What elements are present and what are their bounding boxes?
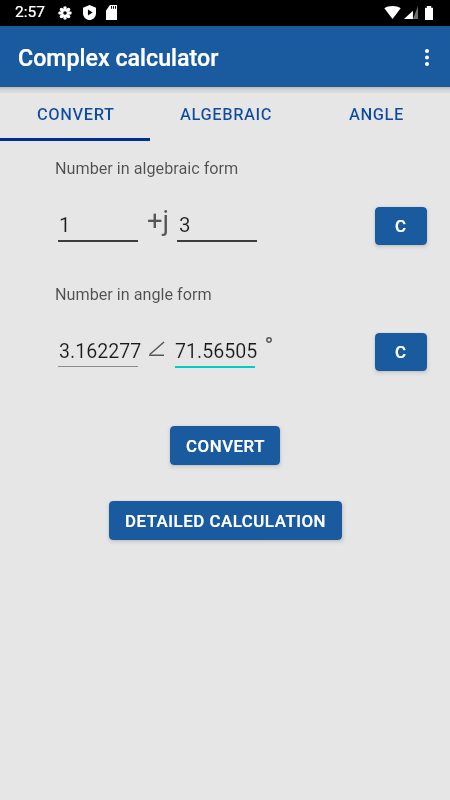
button[interactable]: DETAILED CALCULATION xyxy=(109,501,342,540)
button[interactable]: CONVERT xyxy=(170,426,280,465)
button[interactable]: C xyxy=(375,333,427,371)
staticText: CONVERT xyxy=(186,436,266,456)
staticText: 71.56505 xyxy=(175,340,258,363)
button[interactable]: ANGLE xyxy=(300,87,450,140)
button[interactable]: ALGEBRAIC xyxy=(150,87,300,140)
staticText: 3 xyxy=(179,213,191,237)
staticText: C xyxy=(395,216,407,236)
staticText: 3.162277 xyxy=(59,340,142,363)
staticText: ALGEBRAIC xyxy=(180,105,273,124)
staticText: +j xyxy=(147,204,170,236)
staticText: 1 xyxy=(59,213,71,237)
staticText: Complex calculator xyxy=(18,44,219,71)
staticText: Number in angle form xyxy=(55,285,212,304)
button[interactable]: C xyxy=(375,207,427,245)
staticText: 2:57 xyxy=(15,3,45,21)
staticText: CONVERT xyxy=(37,105,115,124)
button[interactable]: More options xyxy=(402,33,450,81)
staticText: DETAILED CALCULATION xyxy=(125,511,327,531)
staticText: ANGLE xyxy=(349,105,404,124)
staticText: C xyxy=(395,342,407,362)
staticText: Number in algebraic form xyxy=(55,159,239,178)
button[interactable]: CONVERT xyxy=(0,87,150,140)
